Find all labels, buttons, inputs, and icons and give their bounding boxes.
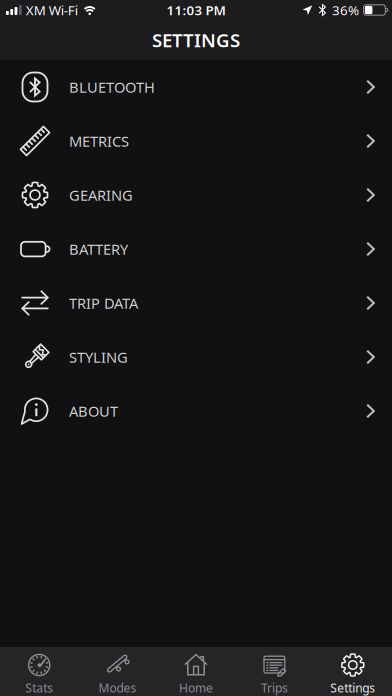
button[interactable]: Home: [157, 647, 235, 696]
button[interactable]: Trips: [235, 647, 314, 696]
button[interactable]: Stats: [0, 647, 78, 696]
staticText: GEARING: [69, 185, 133, 205]
staticText: SETTINGS: [152, 28, 240, 52]
staticText: METRICS: [69, 131, 129, 151]
button[interactable]: ABOUT: [0, 384, 392, 438]
button[interactable]: BATTERY: [0, 222, 392, 276]
staticText: ABOUT: [69, 401, 118, 421]
staticText: 36%: [332, 1, 359, 19]
button[interactable]: GEARING: [0, 168, 392, 222]
staticText: STYLING: [69, 347, 128, 367]
staticText: Modes: [99, 680, 137, 696]
button[interactable]: STYLING: [0, 330, 392, 384]
staticText: BLUETOOTH: [69, 77, 155, 97]
staticText: Settings: [330, 680, 375, 696]
staticText: XM Wi-Fi: [26, 1, 78, 19]
staticText: TRIP DATA: [69, 293, 138, 313]
staticText: Trips: [261, 680, 288, 696]
staticText: Home: [179, 680, 213, 696]
staticText: Stats: [25, 680, 53, 696]
staticText: BATTERY: [69, 239, 128, 259]
button[interactable]: Settings: [314, 647, 392, 696]
button[interactable]: TRIP DATA: [0, 276, 392, 330]
button[interactable]: Modes: [78, 647, 157, 696]
staticText: 11:03 PM: [166, 1, 225, 19]
button[interactable]: BLUETOOTH: [0, 60, 392, 114]
button[interactable]: METRICS: [0, 114, 392, 168]
